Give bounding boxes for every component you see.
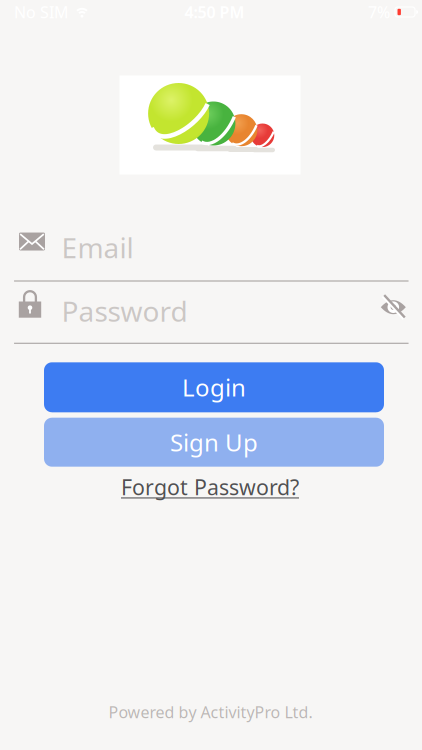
staticText: Forgot Password? [121,473,299,501]
staticText: Powered by ActivityPro Ltd. [108,701,312,723]
button[interactable]: Sign Up [44,418,384,467]
staticText: Sign Up [170,426,258,458]
button[interactable]: Login [44,362,384,412]
staticText: No SIM [14,1,69,23]
button[interactable]: Forgot Password? [121,473,299,501]
staticText: Email [61,229,133,266]
button[interactable]: Show password [380,296,407,320]
staticText: Login [182,371,246,403]
staticText: 4:50 PM [184,1,244,23]
staticText: Password [61,292,187,329]
